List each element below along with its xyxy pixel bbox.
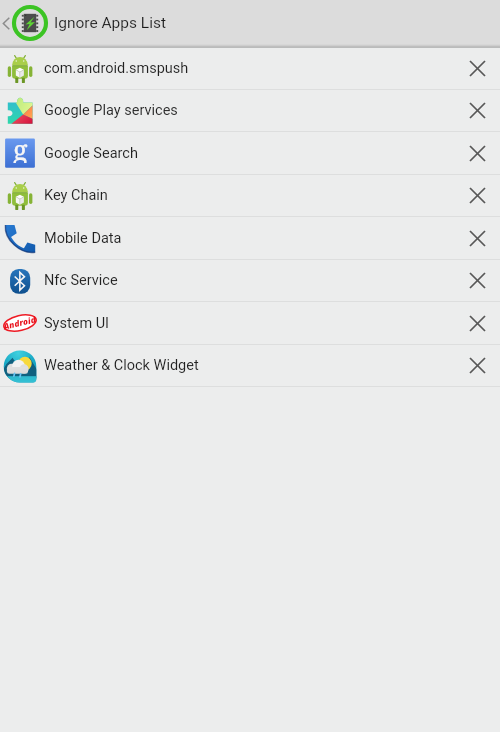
button[interactable]: Remove Mobile Data bbox=[457, 218, 498, 259]
button[interactable]: Key Chain bbox=[0, 175, 500, 217]
staticText: Ignore Apps List bbox=[54, 14, 167, 32]
staticText: com.android.smspush bbox=[44, 60, 457, 77]
button[interactable]: Google Play services bbox=[0, 90, 500, 132]
staticText: Google Play services bbox=[44, 102, 457, 119]
button[interactable]: Remove com.android.smspush bbox=[457, 48, 498, 89]
button[interactable]: Remove Key Chain bbox=[457, 175, 498, 216]
button[interactable]: Remove Nfc Service bbox=[457, 260, 498, 301]
button[interactable]: Remove Google Play services bbox=[457, 90, 498, 131]
button[interactable]: g bbox=[0, 132, 500, 175]
button[interactable]: Weather & Clock Widget bbox=[0, 345, 500, 387]
button[interactable]: Remove System UI bbox=[457, 303, 498, 344]
button[interactable]: Mobile Data bbox=[0, 217, 500, 260]
staticText: Nfc Service bbox=[44, 272, 457, 289]
staticText: Key Chain bbox=[44, 187, 457, 204]
button[interactable]: Navigate up bbox=[0, 0, 48, 46]
staticText: System UI bbox=[44, 315, 457, 332]
staticText: g bbox=[13, 131, 28, 163]
staticText: Mobile Data bbox=[44, 230, 457, 247]
button[interactable]: Nfc Service bbox=[0, 260, 500, 302]
button[interactable]: Android bbox=[0, 302, 500, 345]
staticText: Google Search bbox=[44, 145, 457, 162]
button[interactable]: Remove Google Search bbox=[457, 133, 498, 174]
button[interactable]: Remove Weather & Clock Widget bbox=[457, 345, 498, 386]
staticText: Android bbox=[2, 314, 36, 333]
button[interactable]: com.android.smspush bbox=[0, 48, 500, 90]
staticText: Weather & Clock Widget bbox=[44, 357, 457, 374]
